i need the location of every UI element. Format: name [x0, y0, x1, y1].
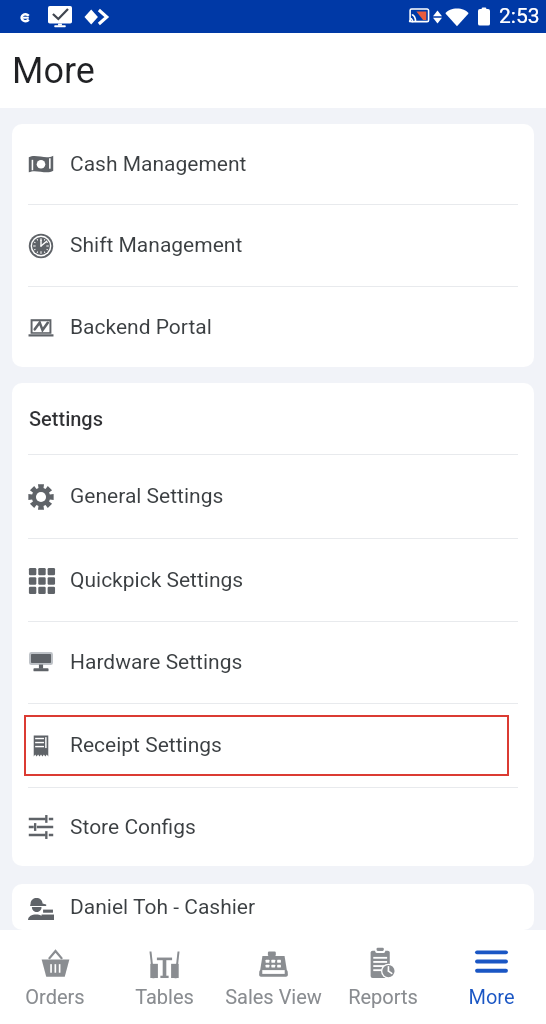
button[interactable]: Hardware Settings: [12, 622, 534, 703]
staticText: General Settings: [70, 484, 224, 509]
button[interactable]: Orders: [0, 930, 110, 1024]
staticText: More: [468, 985, 515, 1008]
button[interactable]: Shift Management: [12, 205, 534, 286]
button[interactable]: Store Configs: [12, 788, 534, 866]
staticText: Tables: [135, 985, 194, 1008]
button[interactable]: Quickpick Settings: [12, 539, 534, 621]
staticText: Shift Management: [70, 233, 243, 258]
button[interactable]: Cash Management: [12, 124, 534, 204]
button[interactable]: Sales View: [219, 930, 328, 1024]
button[interactable]: Backend Portal: [12, 287, 534, 367]
staticText: Receipt Settings: [70, 733, 222, 758]
staticText: Daniel Toh - Cashier: [70, 895, 256, 920]
staticText: Quickpick Settings: [70, 568, 244, 593]
staticText: Orders: [25, 985, 85, 1008]
staticText: Cash Management: [70, 152, 247, 177]
staticText: 2:53: [499, 4, 540, 29]
button[interactable]: Daniel Toh - Cashier: [12, 884, 534, 930]
staticText: Backend Portal: [70, 315, 212, 340]
staticText: Hardware Settings: [70, 650, 243, 675]
staticText: Sales View: [225, 985, 322, 1008]
button[interactable]: Receipt Settings: [12, 704, 534, 787]
button[interactable]: Reports: [328, 930, 437, 1024]
staticText: Reports: [348, 985, 418, 1008]
staticText: Settings: [29, 407, 104, 430]
staticText: More: [12, 50, 95, 92]
button[interactable]: More: [437, 930, 546, 1024]
staticText: Store Configs: [70, 815, 196, 840]
button[interactable]: Tables: [110, 930, 219, 1024]
button[interactable]: General Settings: [12, 455, 534, 538]
